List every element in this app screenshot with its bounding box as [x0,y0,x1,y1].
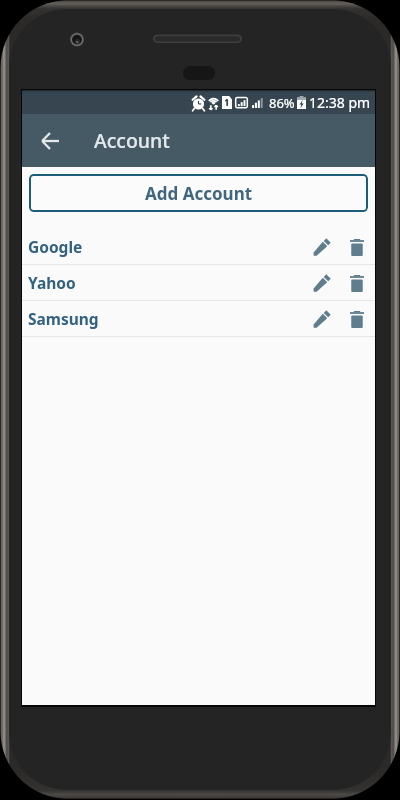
button[interactable]: Google [22,229,375,264]
button[interactable]: Edit Google [308,231,336,263]
staticText: 86% [269,94,295,112]
staticText: Samsung [28,308,99,329]
button[interactable]: Edit Yahoo [308,267,336,299]
staticText: 12:38 pm [309,93,371,112]
staticText: Account [94,127,170,154]
button[interactable]: Add Account [29,174,368,212]
button[interactable]: Samsung [22,301,375,336]
staticText: Google [28,236,83,257]
staticText: Yahoo [28,272,76,293]
button[interactable]: Delete Google [345,231,369,263]
button[interactable]: Delete Yahoo [345,267,369,299]
button[interactable]: Delete Samsung [345,303,369,335]
staticText: Add Account [145,182,253,205]
button[interactable]: Edit Samsung [308,303,336,335]
button[interactable]: Yahoo [22,265,375,300]
button[interactable]: Back [32,123,68,159]
